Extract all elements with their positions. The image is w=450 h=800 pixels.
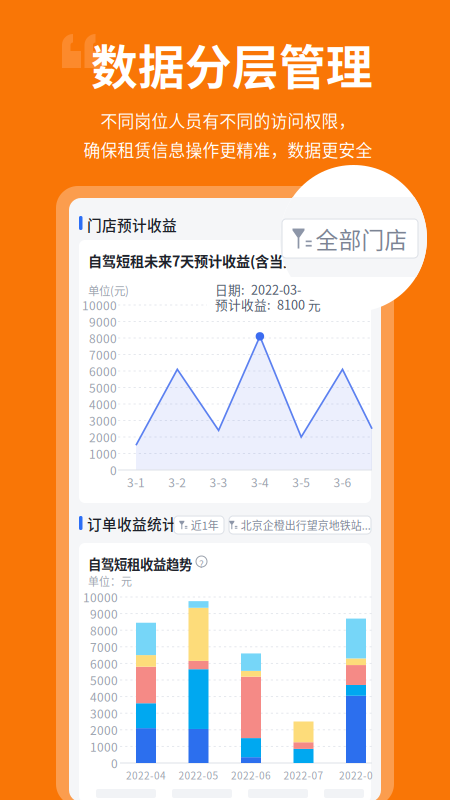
staticText: 2000: [90, 721, 118, 738]
staticText: 自驾短租未来7天预计收益(含当天): [88, 250, 302, 270]
staticText: 1000: [90, 738, 118, 755]
button[interactable]: 全部门店: [282, 219, 418, 258]
staticText: 0: [111, 754, 118, 772]
staticText: 2022-0: [339, 768, 373, 782]
staticText: 3-6: [333, 473, 351, 491]
staticText: 单位(元): [88, 282, 129, 299]
staticText: 2022-04: [126, 768, 166, 782]
staticText: 数据分层管理: [91, 30, 373, 98]
staticText: 5000: [90, 671, 118, 689]
staticText: 0: [110, 461, 117, 479]
staticText: 2022-06: [231, 768, 271, 782]
staticText: 3000: [90, 704, 118, 722]
staticText: 8000: [90, 621, 118, 639]
staticText: 2022-07: [283, 768, 323, 782]
staticText: 确保租赁信息操作更精准，数据更安全: [83, 137, 372, 162]
staticText: 订单收益统计: [87, 513, 177, 534]
staticText: 6000: [90, 655, 118, 672]
staticText: 10000: [83, 588, 118, 606]
staticText: 自驾短租收益趋势: [88, 554, 192, 573]
staticText: 3-1: [127, 473, 145, 491]
staticText: 预计收益: 8100 元: [215, 295, 321, 313]
staticText: 2022-05: [178, 768, 218, 782]
staticText: 7000: [90, 638, 118, 655]
staticText: 全部门店: [315, 222, 407, 255]
staticText: 3-5: [292, 473, 310, 491]
staticText: ?: [199, 556, 204, 571]
button[interactable]: 北京企橙出行望京地铁站...: [229, 516, 371, 534]
staticText: 北京企橙出行望京地铁站...: [241, 517, 371, 533]
staticText: 10000: [82, 296, 117, 314]
staticText: 门店预计收益: [87, 214, 177, 235]
staticText: 5000: [89, 379, 117, 396]
staticText: 6000: [89, 362, 117, 380]
staticText: 7000: [89, 346, 117, 363]
staticText: 1000: [89, 445, 117, 462]
button[interactable]: 近1年: [174, 516, 224, 534]
staticText: 3-2: [168, 473, 186, 491]
staticText: 3000: [89, 412, 117, 429]
staticText: 9000: [90, 605, 118, 622]
staticText: 3-3: [210, 473, 228, 491]
staticText: 3-4: [251, 473, 269, 491]
staticText: 8000: [89, 329, 117, 347]
staticText: 2000: [89, 428, 117, 446]
staticText: 不同岗位人员有不同的访问权限，: [100, 108, 355, 132]
staticText: 4000: [89, 395, 117, 413]
staticText: 9000: [89, 313, 117, 330]
staticText: 近1年: [191, 517, 219, 533]
staticText: 日期: 2022-03-: [215, 280, 301, 298]
staticText: 4000: [90, 688, 118, 705]
staticText: 单位：元: [88, 573, 132, 589]
